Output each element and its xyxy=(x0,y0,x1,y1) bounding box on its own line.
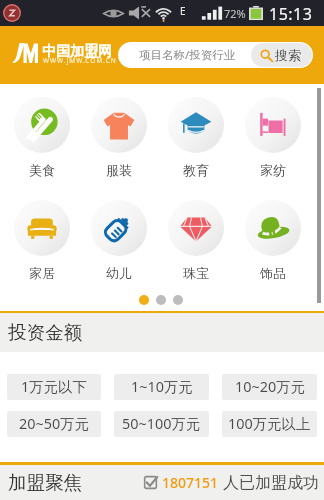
staticText: WWW.JMW.COM.CN xyxy=(43,56,117,65)
staticText: 1万元以下 xyxy=(21,377,87,397)
button[interactable]: 美食 xyxy=(3,97,80,178)
staticText: 100万元以上 xyxy=(228,414,311,434)
staticText: 人已加盟成功 xyxy=(223,473,319,493)
staticText: 教育 xyxy=(183,162,209,178)
button[interactable]: 服装 xyxy=(80,97,157,178)
button[interactable]: 1~10万元 xyxy=(114,374,209,400)
staticText: E xyxy=(180,4,186,18)
button[interactable]: 10~20万元 xyxy=(222,374,317,400)
staticText: 投资金额 xyxy=(8,321,82,344)
button[interactable] xyxy=(139,295,149,305)
button[interactable]: 教育 xyxy=(157,97,234,178)
staticText: 1807151 xyxy=(162,473,219,492)
staticText: 加盟聚焦 xyxy=(8,471,82,494)
staticText: 珠宝 xyxy=(183,265,209,281)
button[interactable]: 1万元以下 xyxy=(7,374,101,400)
button[interactable]: 20~50万元 xyxy=(7,411,101,437)
staticText: 20~50万元 xyxy=(19,414,89,434)
staticText: 家纺 xyxy=(260,162,286,178)
staticText: 幼儿 xyxy=(106,265,132,281)
staticText: 1~10万元 xyxy=(131,377,193,397)
staticText: 服装 xyxy=(106,162,132,178)
button[interactable]: 幼儿 xyxy=(80,200,157,281)
staticText: 项目名称/投资行业 xyxy=(139,47,236,63)
button[interactable]: 项目名称/投资行业 xyxy=(118,42,313,68)
staticText: 饰品 xyxy=(260,265,286,281)
button[interactable]: 饰品 xyxy=(234,200,311,281)
staticText: 50~100万元 xyxy=(122,414,201,434)
button[interactable] xyxy=(156,295,166,305)
staticText: 72% xyxy=(224,6,246,21)
button[interactable]: 50~100万元 xyxy=(114,411,209,437)
staticText: 家居 xyxy=(29,265,55,281)
staticText: 搜索 xyxy=(275,47,301,63)
button[interactable]: 搜索 xyxy=(260,43,301,67)
button[interactable]: 珠宝 xyxy=(157,200,234,281)
staticText: 中国加盟网 xyxy=(42,43,112,61)
staticText: 10~20万元 xyxy=(235,377,305,397)
button[interactable]: 100万元以上 xyxy=(222,411,317,437)
button[interactable]: 家纺 xyxy=(234,97,311,178)
staticText: 美食 xyxy=(29,162,55,178)
button[interactable] xyxy=(173,295,183,305)
staticText: 15:13 xyxy=(269,3,313,25)
button[interactable]: 家居 xyxy=(3,200,80,281)
